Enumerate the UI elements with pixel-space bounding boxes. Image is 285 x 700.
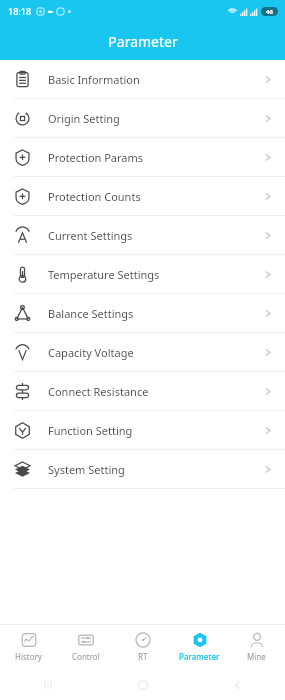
button[interactable]: Parameter xyxy=(171,624,228,670)
staticText: Capacity Voltage xyxy=(48,345,134,360)
staticText: Balance Settings xyxy=(48,306,134,321)
staticText: Origin Setting xyxy=(48,111,120,126)
staticText: System Setting xyxy=(48,462,125,477)
button[interactable]: Current Settings xyxy=(0,216,285,255)
staticText: 18:18 xyxy=(8,5,32,17)
staticText: RT xyxy=(138,651,148,662)
staticText: Basic Information xyxy=(48,72,140,87)
staticText: Control xyxy=(72,651,100,662)
button[interactable]: Origin Setting xyxy=(0,99,285,138)
button[interactable]: Function Setting xyxy=(0,411,285,450)
button[interactable]: Basic Information xyxy=(0,60,285,99)
staticText: Parameter xyxy=(108,32,178,51)
button[interactable]: Capacity Voltage xyxy=(0,333,285,372)
button[interactable]: Control xyxy=(57,624,114,670)
staticText: History xyxy=(15,651,42,662)
button[interactable]: System Setting xyxy=(0,450,285,489)
button[interactable]: Connect Resistance xyxy=(0,372,285,411)
button[interactable]: Protection Counts xyxy=(0,177,285,216)
staticText: Function Setting xyxy=(48,423,133,438)
button[interactable]: Protection Params xyxy=(0,138,285,177)
button[interactable]: RT xyxy=(114,624,171,670)
staticText: 46 xyxy=(266,8,273,16)
staticText: Parameter xyxy=(179,651,220,662)
staticText: Mine xyxy=(247,651,266,662)
staticText: Current Settings xyxy=(48,228,133,243)
staticText: Connect Resistance xyxy=(48,384,149,399)
staticText: Protection Params xyxy=(48,150,144,165)
button[interactable]: Mine xyxy=(228,624,285,670)
button[interactable]: Temperature Settings xyxy=(0,255,285,294)
staticText: Protection Counts xyxy=(48,189,141,204)
button[interactable]: History xyxy=(0,624,57,670)
staticText: Temperature Settings xyxy=(48,267,160,282)
button[interactable]: Balance Settings xyxy=(0,294,285,333)
